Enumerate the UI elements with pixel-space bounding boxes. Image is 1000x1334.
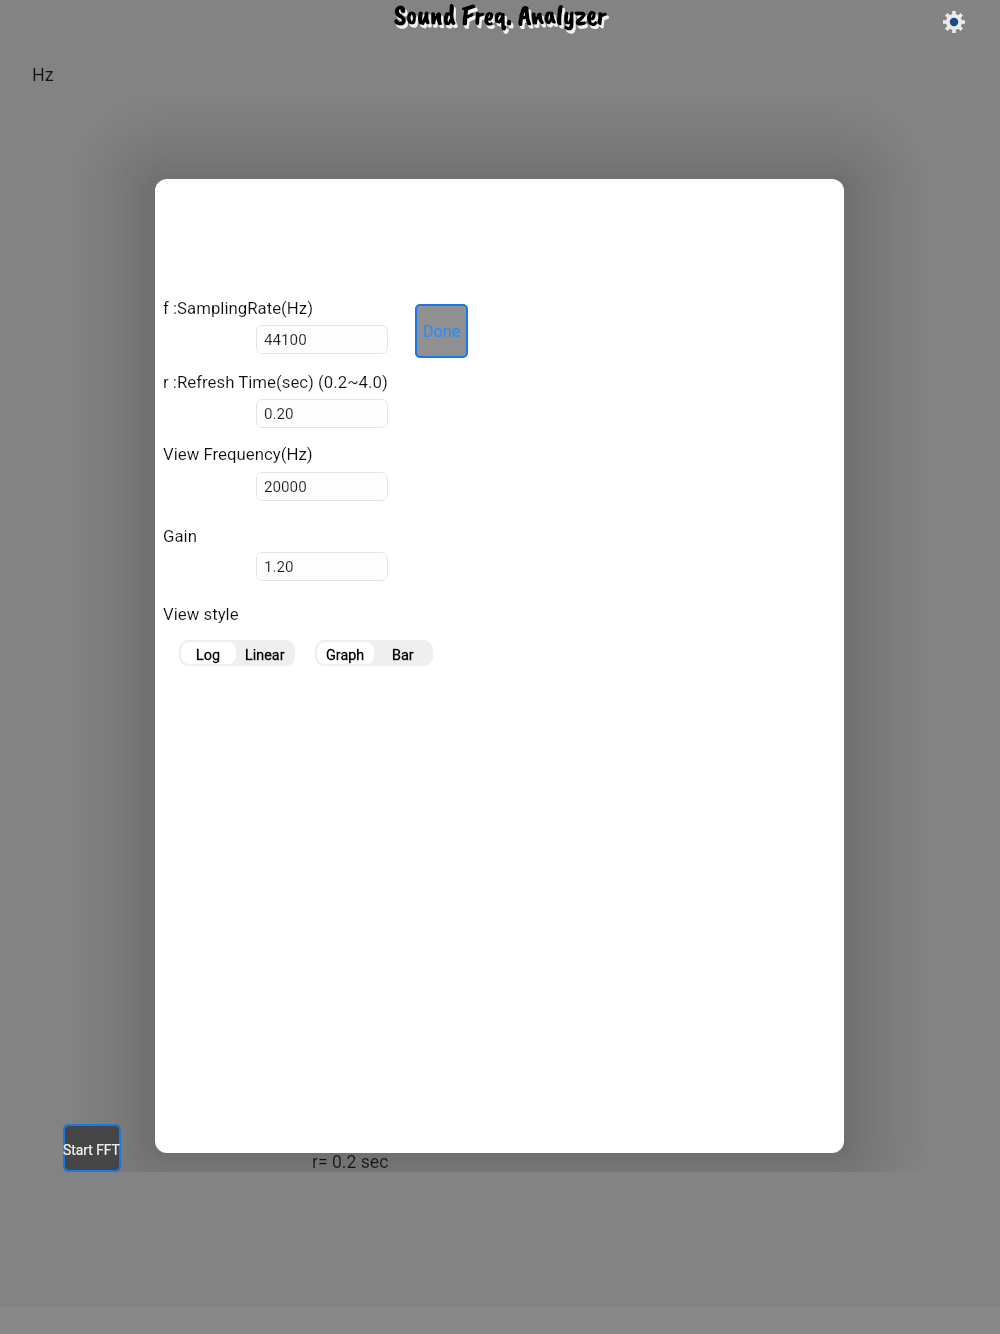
staticText: r :Refresh Time(sec) (0.2~4.0) (163, 372, 388, 392)
staticText: Linear (245, 647, 285, 664)
button[interactable] (63, 1124, 121, 1172)
staticText: 0.20 (264, 405, 294, 423)
staticText: Hz (32, 64, 54, 85)
staticText: f :SamplingRate(Hz) (163, 298, 314, 318)
staticText: Graph (326, 647, 365, 664)
staticText: View style (163, 604, 239, 624)
button[interactable]: Settings (933, 1, 975, 43)
staticText: Gain (163, 526, 197, 546)
button[interactable]: Linear (236, 642, 293, 664)
button[interactable]: Done (415, 304, 468, 358)
button[interactable]: Bar (374, 642, 431, 664)
button[interactable]: 20000 (256, 472, 388, 501)
staticText: r= 0.2 sec (312, 1152, 389, 1173)
button[interactable]: Graph (317, 642, 374, 664)
button[interactable]: 1.20 (256, 552, 388, 581)
staticText: Sound Freq. Analyzer (394, 0, 607, 33)
staticText: Done (423, 322, 461, 341)
staticText: 44100 (264, 331, 307, 349)
button[interactable]: 44100 (256, 325, 388, 354)
staticText: 20000 (264, 478, 307, 496)
staticText: Start FFT (63, 1142, 120, 1158)
button[interactable]: 0.20 (256, 399, 388, 428)
staticText: Bar (392, 647, 414, 664)
staticText: Log (196, 647, 221, 664)
staticText: Sound Freq. Analyzer (396, 0, 609, 36)
button[interactable]: Log (181, 642, 236, 664)
staticText: 1.20 (264, 558, 294, 576)
staticText: View Frequency(Hz) (163, 444, 313, 464)
